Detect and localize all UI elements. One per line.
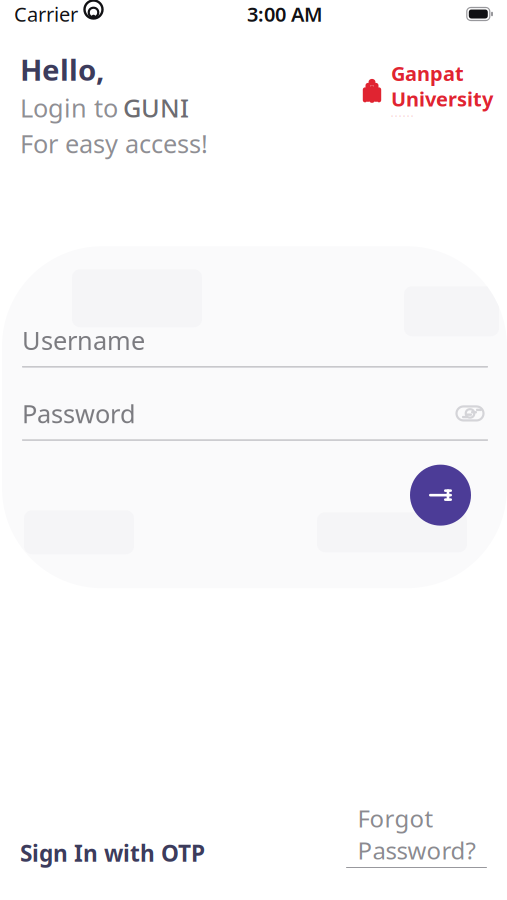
staticText: For easy access! [20, 127, 208, 160]
staticText: Login to [20, 91, 118, 125]
staticText: Username [22, 323, 145, 357]
button[interactable]: Sign in [410, 465, 471, 526]
staticText: Sign In with OTP [20, 838, 205, 868]
staticText: 3:00 AM [247, 1, 323, 27]
staticText: University [391, 86, 493, 112]
button[interactable]: Sign In with OTP [20, 832, 205, 874]
staticText: Ganpat [391, 60, 464, 87]
staticText: Forgot Password? [357, 802, 475, 866]
button[interactable]: Forgot Password? [346, 796, 487, 874]
staticText: Carrier [14, 1, 78, 27]
staticText: · · · · · · [391, 111, 413, 122]
staticText: Password [22, 397, 136, 430]
staticText: GUNI [123, 91, 189, 125]
staticText: Hello, [20, 50, 104, 89]
button[interactable]: Show password [452, 399, 488, 427]
